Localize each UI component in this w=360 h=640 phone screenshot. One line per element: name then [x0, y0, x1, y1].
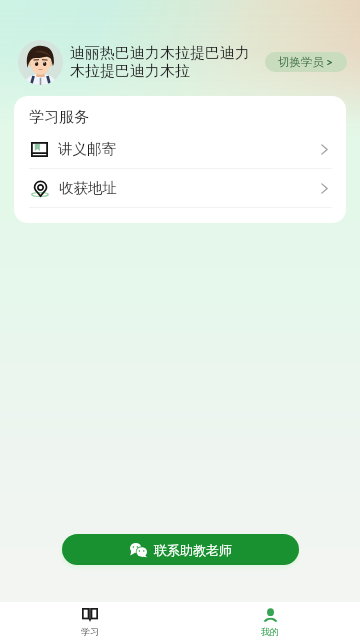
staticText: 学习: [81, 626, 99, 637]
staticText: 学习服务: [29, 108, 89, 127]
button[interactable]: 学习: [0, 602, 180, 640]
button[interactable]: 收获地址: [14, 169, 346, 207]
staticText: 我的: [261, 626, 279, 637]
button[interactable]: 切换学员: [265, 52, 347, 72]
staticText: 讲义邮寄: [58, 140, 116, 158]
button[interactable]: 我的: [180, 602, 360, 640]
staticText: 联系助教老师: [154, 542, 232, 558]
button[interactable]: 联系助教老师: [62, 534, 299, 565]
button[interactable]: 讲义邮寄: [14, 130, 346, 168]
staticText: 切换学员: [278, 55, 324, 69]
staticText: 迪丽热巴迪力木拉提巴迪力木拉提巴迪力木拉: [70, 44, 253, 81]
button[interactable]: Profile avatar: [18, 40, 63, 85]
staticText: 收获地址: [59, 179, 117, 197]
